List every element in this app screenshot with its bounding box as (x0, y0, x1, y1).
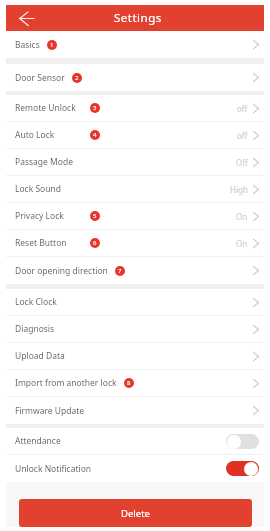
button[interactable]: Firmware Update (6, 397, 264, 424)
staticText: Attendance (15, 435, 61, 447)
button[interactable]: Unlock Notification (6, 455, 264, 482)
button[interactable]: Door opening direction (6, 257, 264, 284)
button[interactable]: Auto Lock (6, 122, 264, 148)
staticText: Off (236, 157, 248, 168)
button[interactable]: Lock Clock (6, 289, 264, 315)
staticText: Lock Sound (15, 183, 61, 195)
staticText: Auto Lock (15, 129, 55, 141)
staticText: 3 (93, 104, 97, 112)
button[interactable]: Privacy Lock (6, 203, 264, 229)
staticText: 8 (127, 379, 131, 387)
staticText: Privacy Lock (15, 210, 64, 222)
staticText: Reset Button (15, 237, 67, 249)
staticText: On (236, 211, 248, 222)
staticText: Firmware Update (15, 405, 85, 417)
staticText: Basics (15, 39, 40, 51)
staticText: On (236, 238, 248, 249)
staticText: off (237, 130, 248, 141)
button[interactable]: Import from another lock (6, 370, 264, 396)
button[interactable]: Passage Mode (6, 149, 264, 175)
staticText: 6 (93, 239, 97, 247)
staticText: Upload Data (15, 350, 65, 362)
staticText: 5 (93, 212, 97, 220)
staticText: 1 (50, 41, 54, 49)
staticText: 7 (118, 267, 122, 275)
button[interactable]: Reset Button (6, 230, 264, 256)
staticText: Door Sensor (15, 72, 65, 84)
staticText: Remote Unlock (15, 102, 76, 114)
staticText: Delete (121, 507, 150, 520)
staticText: 4 (93, 131, 97, 139)
button[interactable]: Diagnosis (6, 316, 264, 342)
staticText: Settings (114, 10, 162, 26)
staticText: Diagnosis (15, 323, 55, 335)
button[interactable]: Remote Unlock (6, 95, 264, 121)
staticText: Lock Clock (15, 296, 57, 308)
button[interactable]: Delete (19, 499, 252, 527)
button[interactable]: Attendance (6, 428, 264, 454)
button[interactable]: Basics (6, 31, 264, 58)
staticText: off (237, 103, 248, 114)
button[interactable]: Door Sensor (6, 64, 264, 91)
button[interactable]: Lock Sound (6, 176, 264, 202)
staticText: 2 (75, 74, 79, 82)
staticText: Unlock Notification (15, 463, 92, 475)
staticText: Import from another lock (15, 377, 117, 389)
button[interactable]: Back (15, 7, 38, 30)
staticText: High (230, 184, 248, 195)
button[interactable]: Upload Data (6, 343, 264, 369)
staticText: Passage Mode (15, 156, 73, 168)
staticText: Door opening direction (15, 265, 108, 277)
